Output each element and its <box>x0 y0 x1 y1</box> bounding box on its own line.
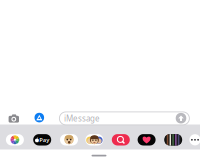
button[interactable]: Images <box>110 133 132 147</box>
button[interactable]: App Store <box>33 112 45 124</box>
button[interactable]: Apple Pay <box>31 133 53 147</box>
button[interactable]: Photos <box>4 133 26 147</box>
button[interactable]: Memoji Stickers <box>83 133 105 147</box>
button[interactable]: More apps <box>189 134 200 146</box>
button[interactable]: Memoji <box>58 133 80 147</box>
staticText: iMessage <box>64 113 100 124</box>
button[interactable]: Digital Touch <box>136 133 158 147</box>
button[interactable]: iMessage text field <box>59 112 189 125</box>
staticText: Pay <box>37 134 51 145</box>
button[interactable]: Music <box>162 133 184 147</box>
button[interactable]: Camera <box>7 112 21 124</box>
button[interactable]: Send <box>175 112 187 124</box>
